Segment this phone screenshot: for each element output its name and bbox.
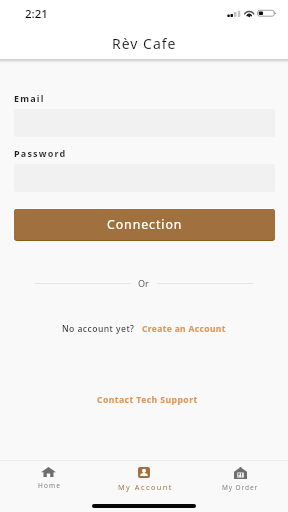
button[interactable]: Create an Account bbox=[142, 323, 226, 335]
staticText: 2:21 bbox=[25, 6, 48, 22]
staticText: Or bbox=[138, 277, 149, 289]
button[interactable]: My Account bbox=[96, 461, 192, 492]
staticText: My Order bbox=[222, 483, 259, 492]
button[interactable]: Connection bbox=[14, 209, 275, 240]
staticText: Email bbox=[14, 92, 45, 104]
staticText: Connection bbox=[107, 216, 183, 233]
other: My Order bbox=[234, 467, 247, 479]
staticText: Password bbox=[14, 147, 67, 159]
staticText: No account yet? bbox=[62, 323, 135, 335]
other: My Account bbox=[138, 467, 150, 478]
button[interactable]: My Order bbox=[192, 461, 288, 492]
other: Home bbox=[41, 467, 56, 477]
staticText: My Account bbox=[118, 482, 173, 492]
staticText: Home bbox=[38, 481, 61, 490]
button[interactable]: Home bbox=[0, 461, 96, 490]
button[interactable]: Contact Tech Support bbox=[97, 394, 198, 406]
staticText: Rèv Cafe bbox=[112, 34, 177, 53]
